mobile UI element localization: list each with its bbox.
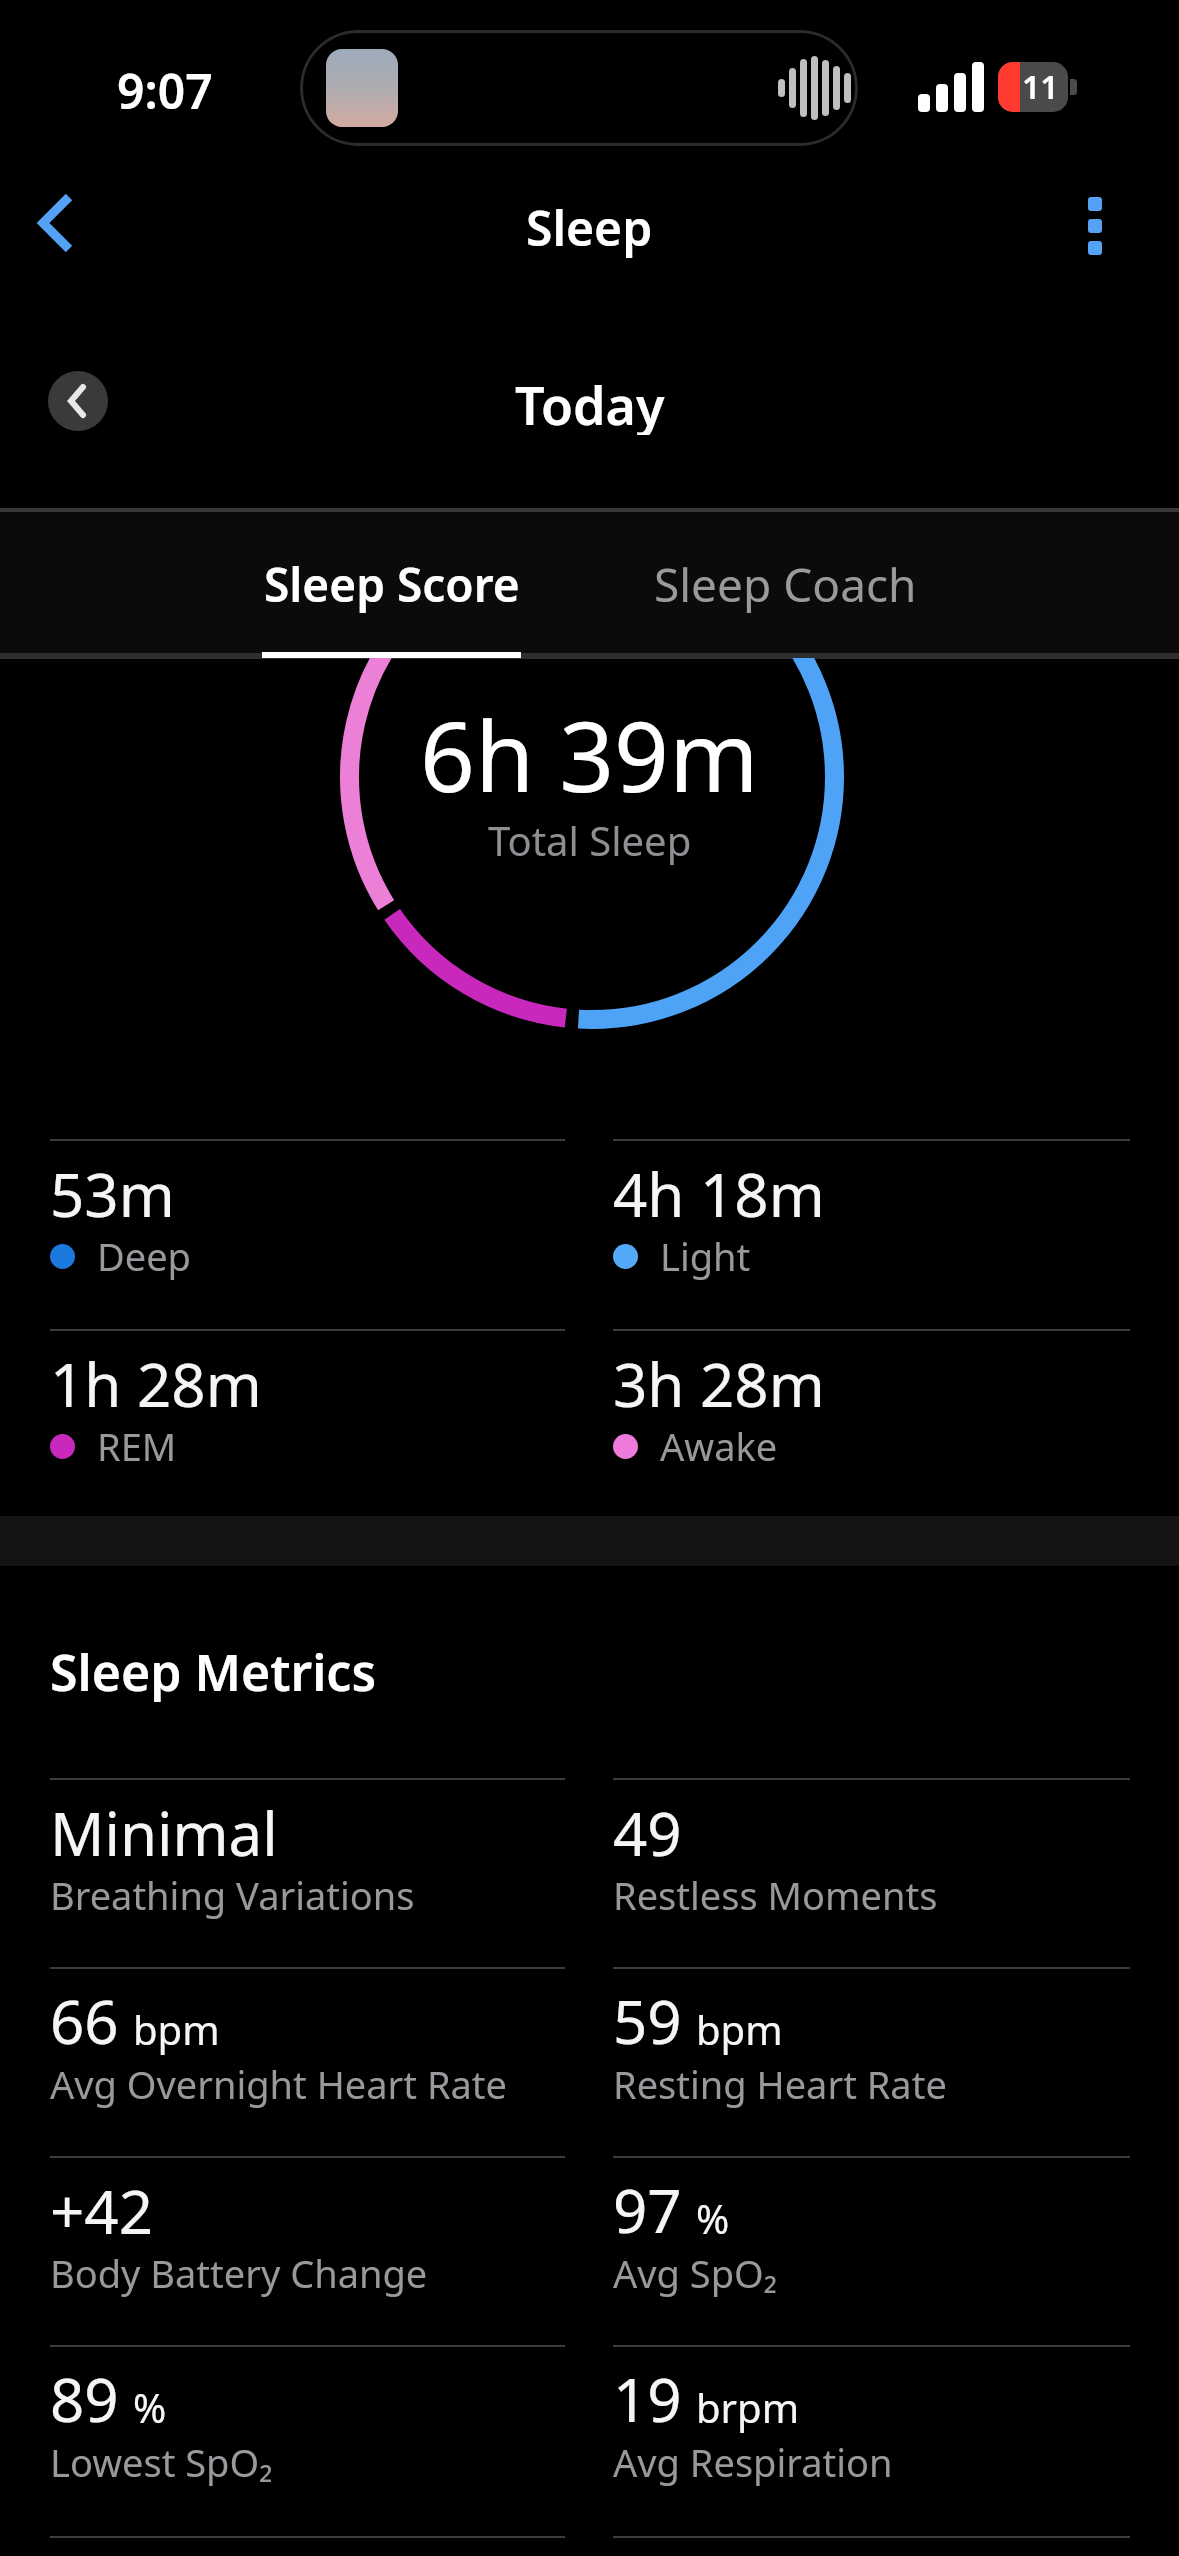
staticText: Minimal bbox=[50, 1792, 278, 1866]
staticText: Body Battery Change bbox=[50, 2247, 428, 2299]
staticText: Light bbox=[660, 1230, 751, 1282]
button[interactable]: Avg Overnight Heart Rate bbox=[50, 2055, 507, 2113]
button[interactable]: Breathing Variations bbox=[50, 1866, 415, 1924]
button[interactable]: Body Battery Change bbox=[50, 2244, 428, 2302]
button[interactable]: Avg SpO₂ bbox=[613, 2244, 778, 2302]
staticText: 6h 39m bbox=[420, 689, 759, 809]
staticText: Breathing Variations bbox=[50, 1869, 415, 1921]
staticText: 59 bbox=[613, 1980, 682, 2054]
button[interactable]: Avg Respiration bbox=[613, 2433, 893, 2491]
staticText: Resting Heart Rate bbox=[613, 2058, 947, 2110]
staticText: 3h 28m bbox=[613, 1343, 825, 1417]
staticText: Sleep Score bbox=[264, 553, 520, 616]
staticText: Avg SpO₂ bbox=[613, 2247, 778, 2299]
staticText: Total Sleep bbox=[488, 813, 692, 865]
staticText: 19 bbox=[613, 2358, 682, 2432]
staticText: bpm bbox=[696, 2002, 783, 2056]
staticText: Restless Moments bbox=[613, 1869, 938, 1921]
button[interactable] bbox=[1088, 197, 1102, 255]
staticText: 9:07 bbox=[117, 58, 213, 118]
staticText: brpm bbox=[696, 2380, 800, 2434]
staticText: 49 bbox=[613, 1792, 682, 1866]
button[interactable]: Sleep Coach bbox=[585, 552, 985, 616]
button[interactable]: Deep bbox=[50, 1227, 191, 1285]
button[interactable]: REM bbox=[50, 1417, 177, 1475]
staticText: Today bbox=[515, 369, 665, 435]
button[interactable] bbox=[48, 371, 108, 431]
staticText: 1h 28m bbox=[50, 1343, 262, 1417]
staticText: Avg Respiration bbox=[613, 2436, 893, 2488]
staticText: 97 bbox=[613, 2169, 682, 2243]
staticText: 11 bbox=[1022, 65, 1059, 109]
button[interactable]: Resting Heart Rate bbox=[613, 2055, 947, 2113]
staticText: Awake bbox=[660, 1420, 778, 1472]
staticText: 89 bbox=[50, 2358, 119, 2432]
staticText: % bbox=[133, 2380, 167, 2434]
staticText: Sleep bbox=[526, 195, 653, 259]
staticText: Lowest SpO₂ bbox=[50, 2436, 273, 2488]
staticText: REM bbox=[97, 1420, 177, 1472]
staticText: Deep bbox=[97, 1230, 191, 1282]
button[interactable]: Awake bbox=[613, 1417, 778, 1475]
button[interactable]: Lowest SpO₂ bbox=[50, 2433, 273, 2491]
staticText: Sleep Metrics bbox=[50, 1638, 377, 1702]
staticText: 53m bbox=[50, 1153, 175, 1227]
staticText: bpm bbox=[133, 2002, 220, 2056]
button[interactable] bbox=[38, 193, 74, 255]
button[interactable]: Sleep Score bbox=[192, 552, 592, 616]
button[interactable]: Light bbox=[613, 1227, 751, 1285]
staticText: 4h 18m bbox=[613, 1153, 825, 1227]
button[interactable]: Restless Moments bbox=[613, 1866, 938, 1924]
staticText: Avg Overnight Heart Rate bbox=[50, 2058, 507, 2110]
staticText: +42 bbox=[50, 2170, 153, 2244]
staticText: 66 bbox=[50, 1980, 119, 2054]
staticText: % bbox=[696, 2191, 730, 2245]
staticText: Sleep Coach bbox=[654, 553, 917, 616]
